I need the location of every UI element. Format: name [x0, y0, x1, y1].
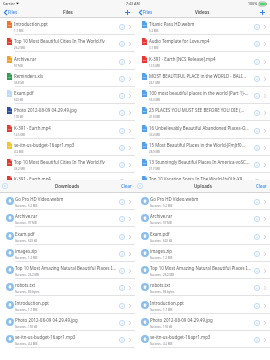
button[interactable]: Info [119, 145, 125, 151]
staticText: Uploads [194, 183, 212, 189]
button[interactable]: Add [123, 7, 135, 17]
button[interactable]: Info [254, 320, 260, 326]
button[interactable]: Info [254, 216, 260, 222]
button[interactable]: images.zip [135, 245, 270, 262]
button[interactable]: Reminders.xls [0, 70, 135, 87]
button[interactable]: Info [119, 234, 125, 240]
button[interactable]: Info [119, 179, 125, 180]
button[interactable]: Info [254, 268, 260, 274]
button[interactable]: Info [254, 145, 260, 151]
button[interactable]: Info [119, 337, 125, 343]
button[interactable]: Top 10 Most Beautiful Cities In The Worl… [0, 156, 135, 173]
button[interactable]: Info [119, 199, 125, 205]
staticText: Top 10 Most Beautiful Cities In The Worl… [14, 159, 105, 165]
button[interactable]: Info [254, 59, 260, 65]
button[interactable]: Info [119, 128, 125, 134]
button[interactable]: Introduction.ppt [135, 297, 270, 314]
button[interactable]: Info [119, 216, 125, 222]
button[interactable]: 16 Unbelievably Beautiful Abandoned Plac… [135, 122, 270, 139]
staticText: Success - 1.2 MB [15, 256, 38, 260]
button[interactable]: Audio Template for Love.mp4 [135, 35, 270, 52]
button[interactable]: Info [119, 41, 125, 47]
button[interactable]: Introduction.ppt [0, 18, 135, 35]
button[interactable]: Info [119, 320, 125, 326]
staticText: Photo 2012-08-09 04.29.49.jpg [14, 107, 77, 113]
button[interactable]: Files [0, 7, 21, 17]
button[interactable]: MOST BEAUTIFUL PLACE in the WORLD - BALI… [135, 70, 270, 87]
button[interactable]: Top 10 Most Amazing Natural Beautiful Pl… [135, 262, 270, 279]
staticText: 4.2 MB [14, 150, 24, 154]
button[interactable]: 13 Stunningly Beautiful Places In Americ… [135, 156, 270, 173]
button[interactable]: Info [254, 285, 260, 291]
button[interactable]: Transfers [0, 180, 10, 192]
staticText: 21.7 MB [149, 167, 160, 171]
button[interactable]: Photo 2012-08-09 04.29.49.jpg [135, 314, 270, 331]
button[interactable]: Info [119, 268, 125, 274]
staticText: Success - 623 kB [15, 239, 38, 243]
button[interactable]: Clear [254, 180, 270, 192]
button[interactable]: Info [254, 24, 260, 30]
button[interactable]: Info [254, 303, 260, 309]
button[interactable]: Info [254, 128, 260, 134]
button[interactable]: Info [119, 93, 125, 99]
staticText: 100% [248, 1, 258, 6]
staticText: Success - 1.7 MB [15, 308, 38, 312]
button[interactable]: Info [254, 199, 260, 205]
button[interactable]: Archive.rar [0, 53, 135, 70]
button[interactable]: Info [254, 251, 260, 257]
button[interactable]: robots.txt [135, 279, 270, 296]
button[interactable]: Top 10 Most Beautiful Cities In The Worl… [0, 35, 135, 52]
button[interactable]: Top 10 Vacation Spots In The World-Ity0U… [135, 173, 270, 180]
button[interactable]: 100 most beautiful places in the world (… [135, 87, 270, 104]
button[interactable]: Info [254, 179, 260, 180]
staticText: 118 kB [14, 115, 24, 119]
button[interactable]: Files [135, 7, 156, 17]
button[interactable]: Info [254, 234, 260, 240]
button[interactable]: Exam.pdf [0, 228, 135, 245]
button[interactable]: 15 Most Beautiful Places in the World-JF… [135, 139, 270, 156]
button[interactable]: Info [254, 76, 260, 82]
button[interactable]: Info [119, 110, 125, 116]
button[interactable]: se-itn-us-budget-16apr1.mp3 [0, 139, 135, 156]
button[interactable]: Go Pro HD Video.webm [135, 193, 270, 210]
staticText: 26.2 MB [14, 46, 25, 50]
button[interactable]: Clear [119, 180, 135, 192]
button[interactable]: Archive.rar [0, 210, 135, 227]
button[interactable]: Info [119, 59, 125, 65]
button[interactable]: K-391 - Earth [NCS Release].mp4 [135, 53, 270, 70]
button[interactable]: K-391 - Earth.mp4 [0, 173, 135, 180]
button[interactable]: se-itn-us-budget-16apr1.mp3 [135, 331, 270, 348]
staticText: Reminders.xls [14, 73, 43, 79]
staticText: Success - 86 bytes [150, 290, 175, 294]
button[interactable]: Info [119, 251, 125, 257]
button[interactable]: Go Pro HD Video.webm [0, 193, 135, 210]
button[interactable]: Add [258, 7, 270, 17]
button[interactable]: se-itn-us-budget-16apr1.mp3 [0, 331, 135, 348]
button[interactable]: Info [119, 24, 125, 30]
button[interactable]: Archive.rar [135, 210, 270, 227]
button[interactable]: Introduction.ppt [0, 297, 135, 314]
staticText: Files [143, 9, 153, 15]
button[interactable]: Info [119, 162, 125, 168]
button[interactable]: images.zip [0, 245, 135, 262]
button[interactable]: K-391 - Earth.mp4 [0, 122, 135, 139]
button[interactable]: Info [254, 93, 260, 99]
button[interactable]: Photo 2012-08-09 04.29.49.jpg [0, 314, 135, 331]
button[interactable]: Transfers [135, 180, 145, 192]
staticText: Success - 4.2 MB [150, 342, 173, 346]
button[interactable]: Info [119, 76, 125, 82]
button[interactable]: Info [254, 162, 260, 168]
button[interactable]: Info [119, 303, 125, 309]
button[interactable]: Info [254, 41, 260, 47]
button[interactable]: Top 10 Most Amazing Natural Beautiful Pl… [0, 262, 135, 279]
button[interactable]: Info [254, 110, 260, 116]
button[interactable]: Exam.pdf [135, 228, 270, 245]
button[interactable]: Info [254, 337, 260, 343]
staticText: 5.2 MB [149, 29, 159, 33]
button[interactable]: Titanic Pass HD.webm [135, 18, 270, 35]
button[interactable]: robots.txt [0, 279, 135, 296]
button[interactable]: 25 PLACES YOU MUST SEE BEFORE YOU DIE (.… [135, 104, 270, 121]
button[interactable]: Info [119, 285, 125, 291]
button[interactable]: Photo 2012-08-09 04.29.49.jpg [0, 104, 135, 121]
button[interactable]: Exam.pdf [0, 87, 135, 104]
